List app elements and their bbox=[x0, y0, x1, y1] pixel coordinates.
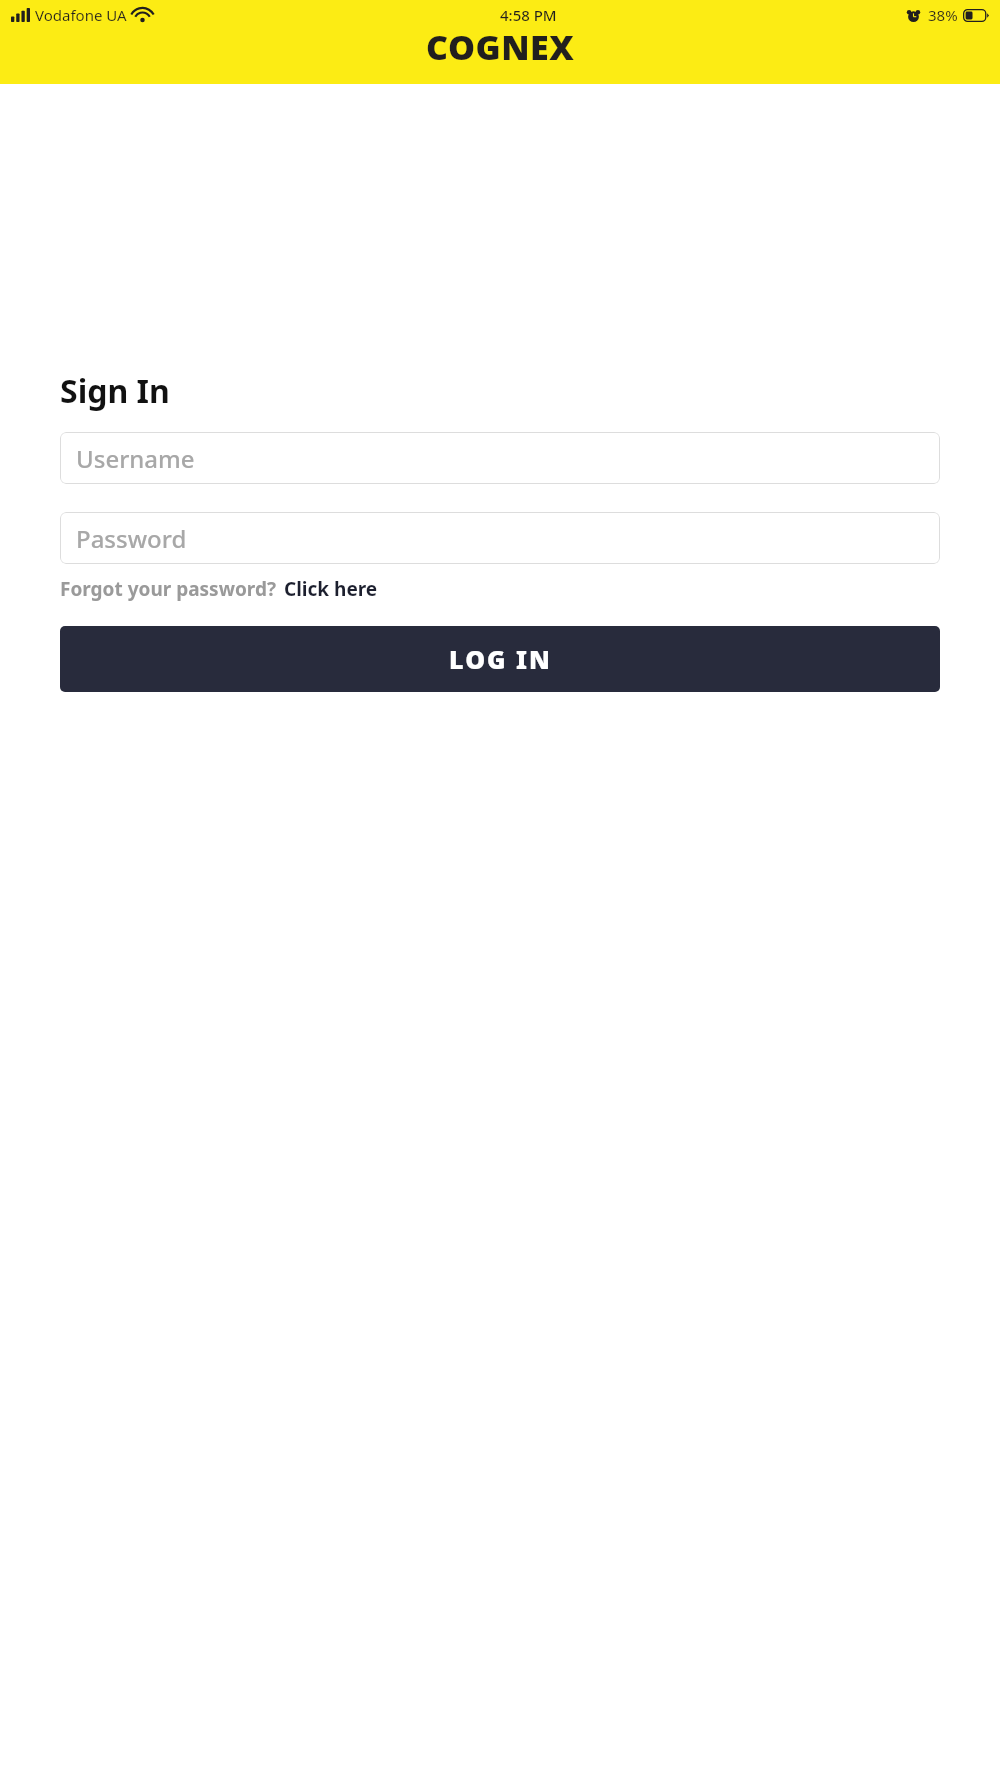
staticText: COGNEX bbox=[426, 24, 575, 70]
staticText: 38% bbox=[928, 5, 958, 25]
other: Battery 38 percent bbox=[963, 9, 989, 22]
button[interactable]: LOG IN bbox=[60, 626, 940, 692]
staticText: Sign In bbox=[60, 369, 170, 413]
staticText: Username bbox=[76, 442, 195, 475]
staticText: 4:58 PM bbox=[500, 5, 557, 25]
staticText: LOG IN bbox=[449, 642, 552, 676]
other: Alarm set bbox=[906, 8, 921, 23]
staticText: Forgot your password? bbox=[60, 576, 276, 602]
button[interactable]: Password bbox=[60, 512, 940, 564]
other: Cellular signal bbox=[11, 8, 30, 22]
staticText: Password bbox=[76, 522, 187, 555]
staticText: Click here bbox=[284, 576, 378, 602]
staticText: Vodafone UA bbox=[35, 5, 127, 25]
button[interactable]: Click here bbox=[284, 576, 378, 602]
button[interactable]: Username bbox=[60, 432, 940, 484]
other: Wi-Fi bbox=[133, 8, 152, 22]
